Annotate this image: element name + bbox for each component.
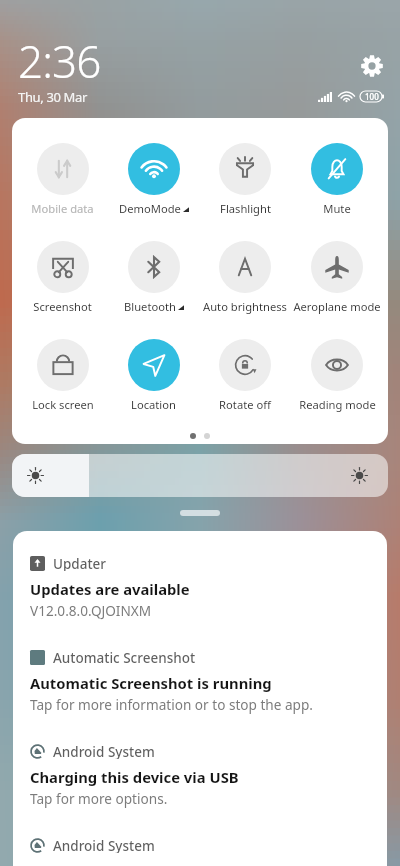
staticText: Android System — [53, 743, 155, 759]
staticText: Mute — [323, 201, 351, 216]
staticText: Screenshot — [33, 299, 92, 314]
button[interactable]: Aeroplane mode — [291, 241, 383, 314]
staticText: Android System — [53, 837, 155, 853]
staticText: Flashlight — [220, 201, 271, 216]
staticText: 100 — [365, 91, 379, 102]
staticText: Rotate off — [219, 397, 271, 412]
staticText: Automatic Screenshot is running — [30, 673, 272, 693]
button[interactable]: Reading mode — [291, 339, 383, 412]
staticText: Location — [131, 397, 176, 412]
button[interactable]: Rotate off — [199, 339, 291, 412]
button[interactable]: Auto brightness — [199, 241, 291, 314]
button[interactable]: Automatic Screenshot — [13, 649, 387, 743]
staticText: Lock screen — [32, 397, 94, 412]
staticText: Automatic Screenshot — [53, 649, 196, 665]
button[interactable]: Android System — [13, 837, 387, 853]
staticText: DemoMode — [119, 201, 181, 216]
button[interactable]: Location — [108, 339, 199, 412]
button[interactable]: Mobile data — [17, 143, 108, 216]
button[interactable]: Lock screen — [17, 339, 108, 412]
button[interactable]: Settings — [361, 55, 383, 77]
button[interactable]: Mute — [291, 143, 383, 216]
staticText: Updater — [53, 555, 107, 571]
staticText: Thu, 30 Mar — [18, 88, 88, 106]
staticText: V12.0.8.0.QJOINXM — [30, 601, 152, 620]
button[interactable]: Brightness — [12, 454, 388, 497]
button[interactable]: Screenshot — [17, 241, 108, 314]
staticText: Tap for more options. — [30, 789, 168, 808]
button[interactable]: Flashlight — [199, 143, 291, 216]
staticText: 2:36 — [18, 31, 101, 91]
staticText: Reading mode — [299, 397, 376, 412]
staticText: Aeroplane mode — [293, 299, 381, 314]
staticText: Charging this device via USB — [30, 767, 239, 787]
staticText: Tap for more information or to stop the … — [30, 695, 313, 714]
staticText: Bluetooth — [124, 299, 176, 314]
button[interactable]: DemoMode — [108, 143, 199, 216]
button[interactable]: Android System — [13, 743, 387, 837]
staticText: Updates are available — [30, 579, 190, 599]
button[interactable]: Bluetooth — [108, 241, 199, 314]
staticText: Auto brightness — [203, 299, 287, 314]
button[interactable]: Updater — [13, 555, 387, 649]
staticText: Mobile data — [31, 201, 94, 216]
